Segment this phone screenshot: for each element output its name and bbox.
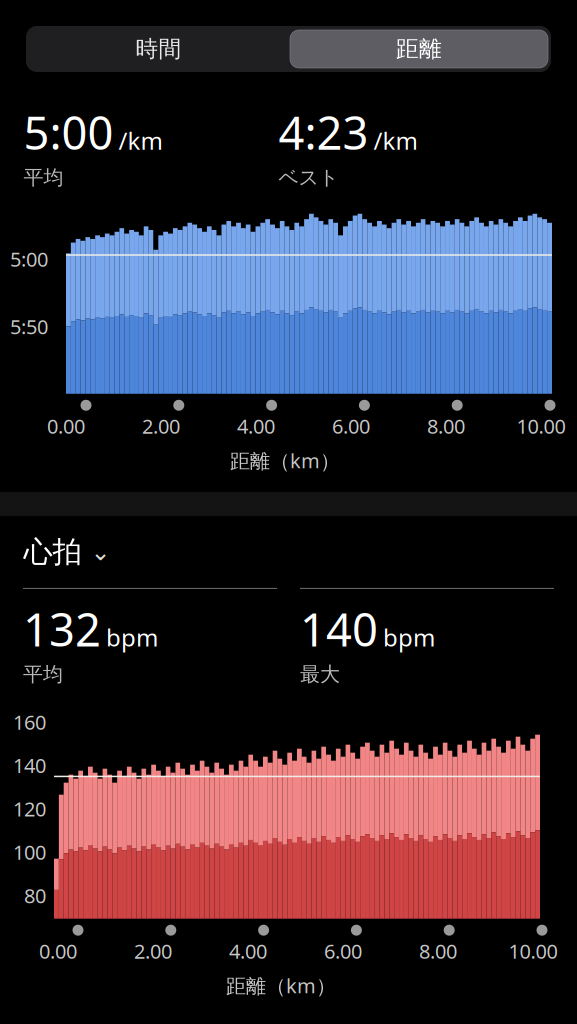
button[interactable]: 距離	[290, 30, 550, 68]
staticText: 平均	[23, 165, 63, 190]
staticText: 0.00	[39, 938, 77, 964]
staticText: 8.00	[419, 938, 457, 964]
staticText: 6.00	[324, 938, 362, 964]
staticText: 6.00	[332, 413, 370, 439]
staticText: 4.00	[229, 938, 267, 964]
staticText: 120	[13, 795, 46, 822]
staticText: 距離	[396, 35, 442, 63]
button[interactable]: 心拍	[23, 516, 553, 570]
staticText: 平均	[23, 662, 63, 687]
staticText: 0.00	[47, 413, 85, 439]
staticText: 5:00	[23, 102, 113, 162]
staticText: 8.00	[427, 413, 465, 439]
staticText: bpm	[106, 621, 158, 653]
staticText: 132	[23, 599, 101, 659]
staticText: 100	[13, 839, 46, 865]
staticText: 5:00	[10, 246, 48, 272]
staticText: 2.00	[134, 938, 172, 964]
staticText: ベスト	[278, 165, 338, 190]
staticText: ⌄	[90, 538, 110, 565]
staticText: 10.00	[516, 413, 565, 439]
staticText: 2.00	[142, 413, 180, 439]
staticText: 時間	[135, 35, 181, 63]
staticText: 4.00	[237, 413, 275, 439]
staticText: 心拍	[23, 534, 81, 570]
staticText: 距離（km）	[230, 447, 340, 474]
staticText: 160	[13, 709, 46, 735]
staticText: 4:23	[278, 102, 368, 162]
button[interactable]: 時間	[27, 28, 290, 70]
staticText: 140	[300, 599, 378, 659]
staticText: 最大	[300, 662, 340, 687]
staticText: 10.00	[508, 938, 557, 964]
staticText: 5:50	[10, 313, 48, 340]
staticText: 距離（km）	[226, 972, 336, 999]
staticText: bpm	[383, 621, 435, 653]
staticText: /km	[118, 124, 162, 156]
staticText: 140	[13, 752, 46, 779]
staticText: /km	[373, 124, 417, 156]
staticText: 80	[24, 882, 46, 909]
